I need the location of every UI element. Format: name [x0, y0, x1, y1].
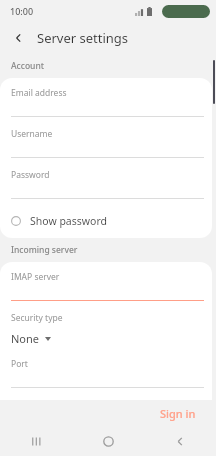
staticText: 10:00: [10, 5, 34, 17]
staticText: Security type: [11, 312, 63, 324]
button[interactable]: Sign in: [140, 401, 216, 426]
staticText: None: [11, 331, 40, 346]
staticText: Port: [11, 358, 28, 370]
button[interactable]: Username: [11, 128, 204, 169]
button[interactable]: Recent apps: [0, 426, 72, 456]
staticText: Incoming server: [11, 244, 78, 256]
staticText: Show password: [30, 214, 107, 228]
button[interactable]: Email address: [11, 87, 204, 128]
staticText: Email address: [11, 87, 67, 99]
button[interactable]: Password: [11, 169, 204, 210]
button[interactable]: Port: [11, 358, 204, 399]
staticText: Password: [11, 169, 50, 181]
button[interactable]: Home: [72, 426, 144, 456]
staticText: Account: [11, 60, 45, 72]
staticText: Server settings: [37, 29, 129, 47]
staticText: Username: [11, 128, 53, 140]
button[interactable]: Back: [9, 28, 29, 48]
button[interactable]: IMAP server: [11, 271, 204, 312]
staticText: Sign in: [160, 406, 196, 421]
button[interactable]: Back: [144, 426, 216, 456]
button[interactable]: Show password: [11, 210, 204, 232]
button[interactable]: Security type: [11, 312, 204, 358]
staticText: IMAP server: [11, 271, 60, 283]
